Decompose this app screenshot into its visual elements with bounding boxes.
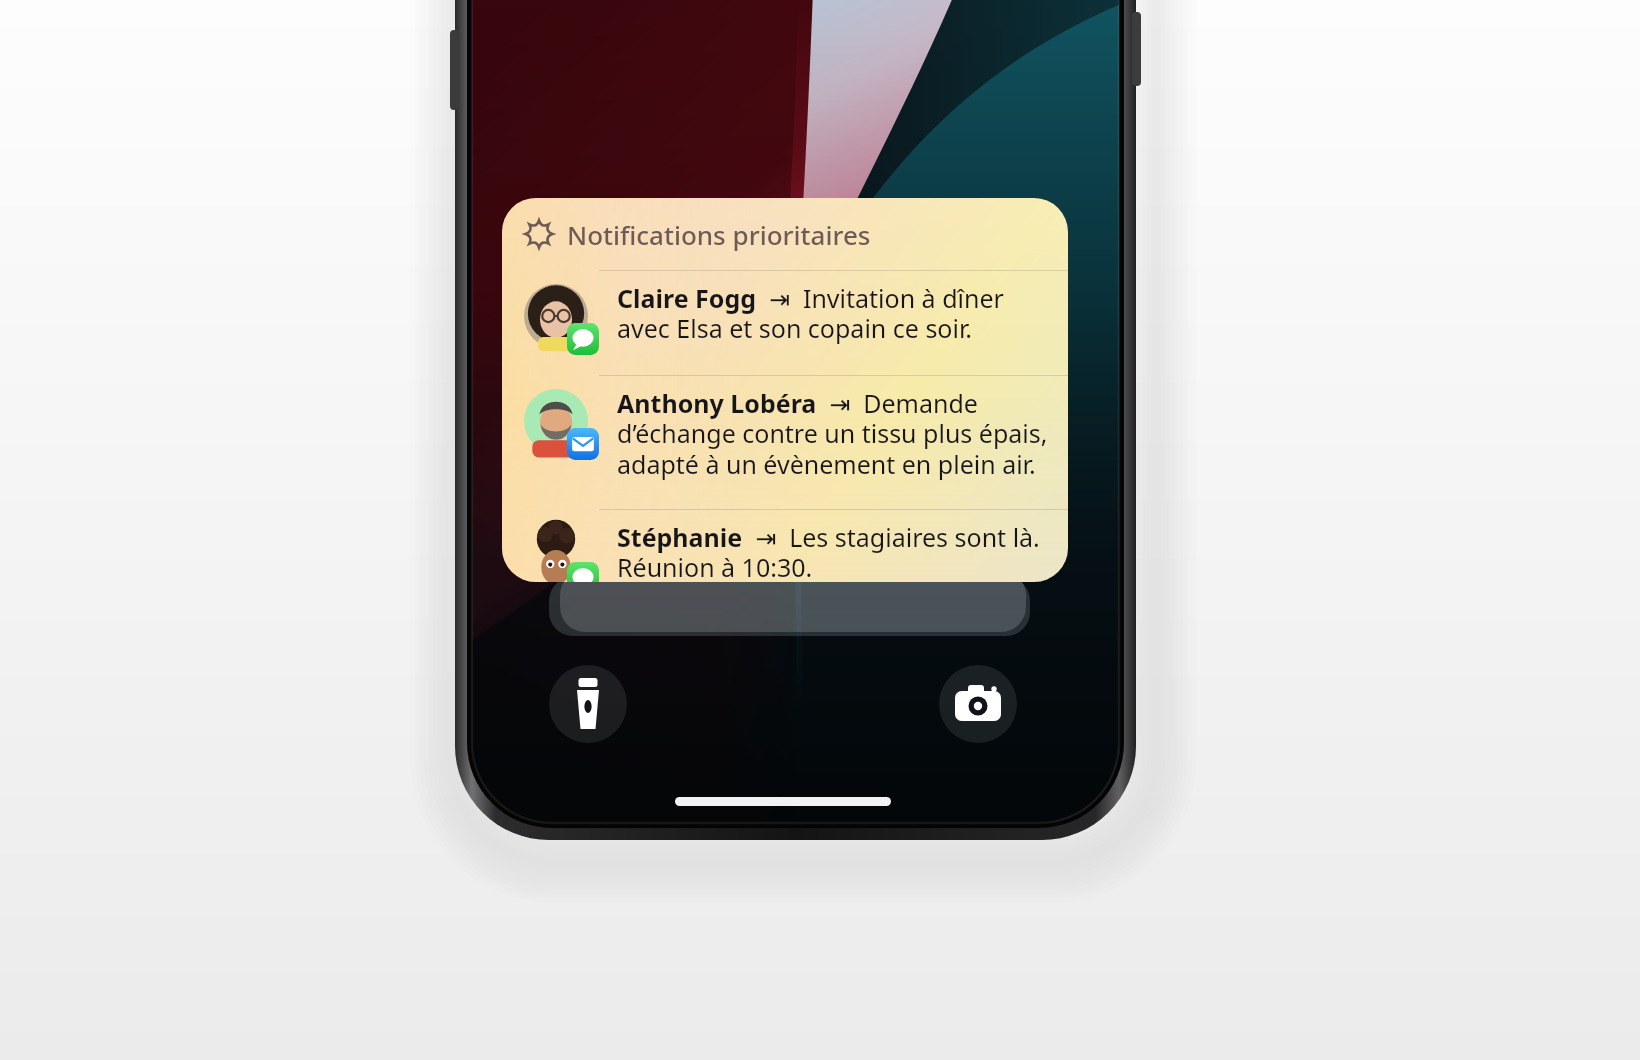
button[interactable]: Anthony Lobéra ⇥ Demande d’échange contr… xyxy=(502,376,1068,509)
button[interactable]: Flashlight xyxy=(549,665,627,743)
button[interactable]: Claire Fogg ⇥ Invitation à dîner avec El… xyxy=(502,271,1068,375)
button[interactable]: Camera xyxy=(939,665,1017,743)
staticText: Anthony Lobéra ⇥ Demande d’échange contr… xyxy=(617,386,1054,482)
button[interactable]: Notifications prioritaires xyxy=(502,198,1068,582)
staticText: Claire Fogg ⇥ Invitation à dîner avec El… xyxy=(617,281,1054,346)
staticText: Stéphanie ⇥ Les stagiaires sont là. Réun… xyxy=(617,520,1054,582)
staticText: Notifications prioritaires xyxy=(567,217,871,252)
button[interactable]: Stéphanie ⇥ Les stagiaires sont là. Réun… xyxy=(502,510,1068,582)
